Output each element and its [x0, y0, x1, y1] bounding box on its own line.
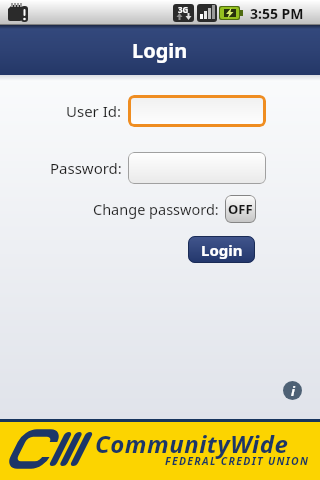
staticText: Login [201, 240, 243, 260]
button[interactable]: CommunityWide [0, 419, 320, 480]
staticText: Change password: [93, 199, 219, 219]
staticText: 3G [178, 4, 189, 15]
button[interactable] [128, 95, 266, 127]
staticText: CommunityWide [95, 427, 289, 460]
staticText: Password: [50, 158, 122, 178]
staticText: 3:55 PM [250, 4, 304, 23]
staticText: Login [132, 37, 188, 64]
staticText: User Id: [66, 101, 122, 121]
button[interactable]: i [283, 381, 302, 400]
staticText: i [291, 382, 295, 400]
button[interactable]: Login [188, 236, 255, 263]
staticText: FEDERAL CREDIT UNION [165, 454, 310, 468]
button[interactable] [128, 152, 266, 184]
button[interactable]: OFF [225, 195, 256, 223]
staticText: OFF [228, 200, 253, 218]
